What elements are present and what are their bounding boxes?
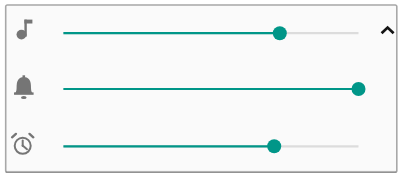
button[interactable]: Collapse volume panel: [372, 18, 403, 49]
button[interactable]: Alarm volume: [6, 121, 396, 169]
button[interactable]: Media volume: [6, 8, 396, 58]
button[interactable]: Ring volume: [6, 64, 396, 114]
